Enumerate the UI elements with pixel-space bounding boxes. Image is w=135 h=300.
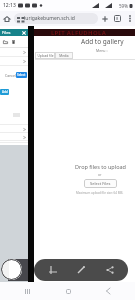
button[interactable] [0,57,28,66]
button[interactable] [0,125,28,133]
button[interactable]: More options [124,11,135,26]
staticText: 12:13 [3,2,16,9]
staticText: Drop files to upload [75,163,126,170]
button[interactable]: Upload file [35,52,55,59]
button[interactable]: Select Files [84,179,117,188]
button[interactable]: Tabs [111,11,124,26]
button[interactable]: Close [20,29,27,36]
staticText: Add to gallery [81,37,124,46]
button[interactable]: Media library [55,52,73,59]
staticText: Upload file [37,54,54,58]
staticText: 8 [116,16,119,21]
button[interactable]: Cancel [5,73,16,78]
staticText: or [98,172,102,177]
button[interactable]: Crop [43,260,63,280]
button[interactable]: Markup [71,260,91,280]
staticText: Select [17,73,26,77]
button[interactable]: Recents [14,282,40,300]
button[interactable] [0,133,28,141]
button[interactable]: New folder [2,39,8,45]
staticText: Add [2,90,8,94]
staticText: Select Files [90,181,111,186]
button[interactable]: Home [0,11,14,26]
button[interactable]: Delete [10,39,16,45]
staticText: Media library [55,54,73,58]
button[interactable]: Add [0,89,9,95]
button[interactable]: Home [55,282,81,300]
button[interactable]: Share [100,260,120,280]
staticText: Maximum upload file size: 64 MB. [76,191,124,195]
button[interactable]: Back [95,282,121,300]
button[interactable]: Screenshot preview [1,259,22,280]
staticText: Menu › [96,48,108,53]
staticText: lurigakebumen.sch.id [24,15,75,22]
button[interactable] [0,48,28,57]
button[interactable]: Files [0,29,28,36]
button[interactable]: Select [16,72,27,78]
staticText: Files [2,30,11,35]
staticText: LPIT ALFUDHOLA KEBUMEN [36,29,121,36]
button[interactable]: lurigakebumen.sch.id [14,13,98,24]
button[interactable]: New tab [98,11,111,26]
staticText: 59% [119,3,128,9]
